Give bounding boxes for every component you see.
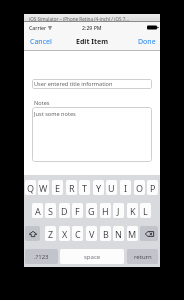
staticText: Just some notes — [34, 110, 76, 118]
button[interactable]: Delete — [140, 226, 158, 241]
button[interactable]: F — [72, 203, 83, 218]
button[interactable]: J — [113, 203, 124, 218]
staticText: Edit Item — [76, 37, 109, 47]
button[interactable]: Cancel — [24, 32, 58, 51]
button[interactable]: B — [100, 226, 111, 241]
staticText: return — [134, 253, 152, 261]
button[interactable]: M — [127, 226, 138, 241]
button[interactable]: V — [86, 226, 97, 241]
button[interactable]: G — [86, 203, 97, 218]
staticText: I — [124, 182, 128, 194]
button[interactable]: K — [127, 203, 138, 218]
staticText: P — [150, 182, 156, 194]
staticText: N — [115, 228, 122, 240]
staticText: Carrier — [29, 24, 47, 31]
button[interactable]: L — [140, 203, 151, 218]
button[interactable]: E — [52, 180, 63, 195]
staticText: F — [75, 205, 80, 217]
button[interactable]: Q — [25, 180, 36, 195]
staticText: T — [82, 182, 88, 194]
button[interactable]: C — [72, 226, 83, 241]
staticText: A — [35, 205, 41, 217]
button[interactable]: N — [113, 226, 124, 241]
button[interactable]: X — [59, 226, 70, 241]
staticText: D — [61, 205, 68, 217]
button[interactable]: Y — [93, 180, 104, 195]
staticText: M — [128, 228, 137, 240]
staticText: .?123 — [34, 253, 49, 261]
button[interactable]: I — [120, 180, 131, 195]
staticText: X — [62, 228, 68, 240]
staticText: R — [69, 182, 75, 194]
button[interactable]: Done — [132, 32, 160, 51]
button[interactable]: D — [59, 203, 70, 218]
button[interactable]: R — [66, 180, 77, 195]
staticText: Notes — [34, 99, 50, 107]
button[interactable]: P — [147, 180, 158, 195]
button[interactable]: O — [134, 180, 145, 195]
staticText: K — [130, 205, 136, 217]
button[interactable]: A — [32, 203, 43, 218]
button[interactable]: .?123 — [25, 249, 58, 264]
staticText: C — [75, 228, 81, 240]
button[interactable]: Just some notes — [32, 107, 152, 162]
button[interactable]: return — [127, 249, 158, 264]
staticText: iOS Simulator – iPhone Retina (4-inch) /… — [29, 16, 130, 22]
staticText: 2:29 PM — [82, 24, 102, 31]
staticText: Done — [138, 37, 156, 46]
staticText: L — [143, 205, 148, 217]
staticText: Z — [48, 228, 54, 240]
staticText: U — [108, 182, 115, 194]
staticText: E — [55, 182, 61, 194]
button[interactable]: Shift — [25, 226, 40, 241]
staticText: G — [88, 205, 95, 217]
staticText: S — [48, 205, 53, 217]
staticText: V — [89, 228, 95, 240]
staticText: Y — [96, 182, 102, 194]
staticText: B — [103, 228, 109, 240]
staticText: W — [39, 182, 48, 194]
button[interactable]: U — [106, 180, 117, 195]
staticText: Cancel — [30, 37, 52, 46]
staticText: space — [84, 253, 101, 261]
button[interactable]: W — [38, 180, 49, 195]
button[interactable]: H — [100, 203, 111, 218]
staticText: J — [117, 205, 120, 217]
button[interactable]: User entered title information — [32, 79, 152, 89]
button[interactable]: space — [60, 249, 124, 264]
button[interactable]: S — [45, 203, 56, 218]
staticText: Q — [27, 182, 35, 194]
staticText: H — [102, 205, 109, 217]
staticText: O — [136, 182, 144, 194]
button[interactable]: Z — [45, 226, 56, 241]
button[interactable]: T — [79, 180, 90, 195]
staticText: User entered title information — [34, 80, 113, 88]
